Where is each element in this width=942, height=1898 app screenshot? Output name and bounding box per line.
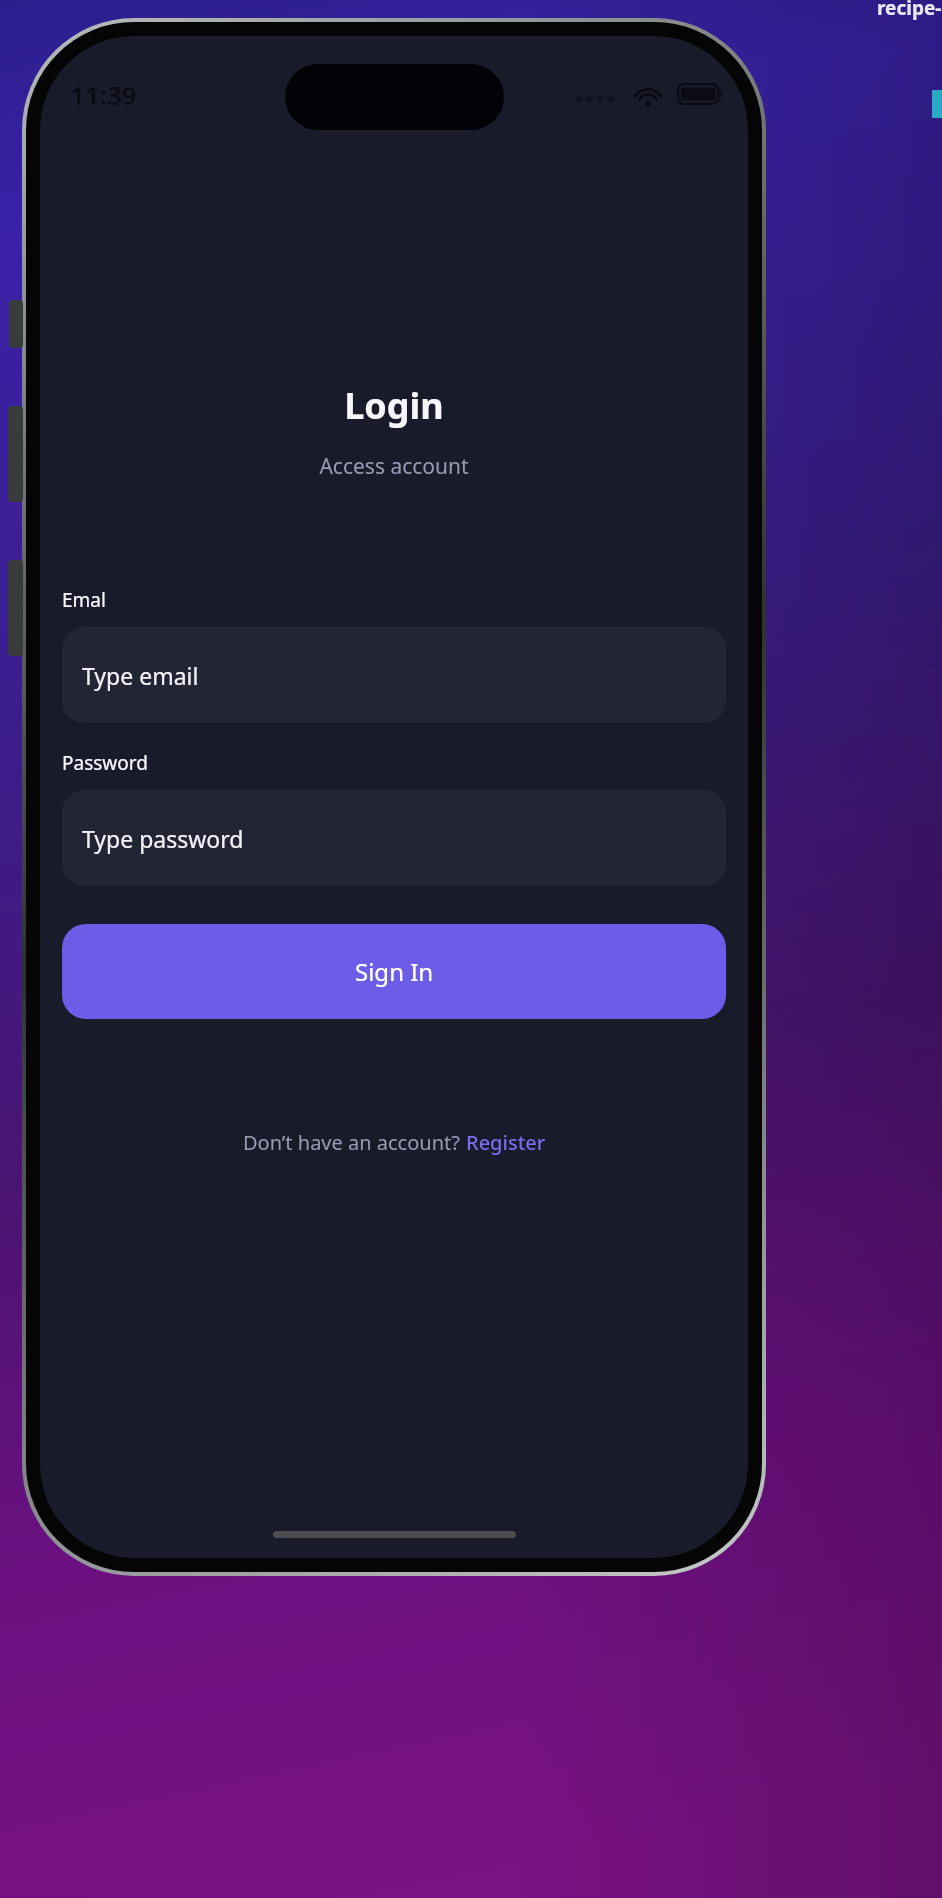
- staticText: Register: [466, 1129, 546, 1156]
- staticText: Sign In: [355, 955, 434, 988]
- button[interactable]: Type password: [62, 790, 726, 886]
- staticText: Login: [344, 381, 444, 430]
- staticText: Don’t have an account?: [243, 1129, 466, 1156]
- staticText: Type password: [82, 823, 244, 854]
- staticText: Type email: [82, 660, 199, 691]
- staticText: Access account: [319, 452, 469, 481]
- staticText: Emal: [62, 587, 106, 613]
- button[interactable]: Register: [466, 1129, 546, 1156]
- staticText: 11:39: [70, 77, 137, 112]
- button[interactable]: Sign In: [62, 924, 726, 1019]
- button[interactable]: Type email: [62, 627, 726, 723]
- staticText: Password: [62, 750, 148, 776]
- staticText: recipe-: [877, 0, 942, 21]
